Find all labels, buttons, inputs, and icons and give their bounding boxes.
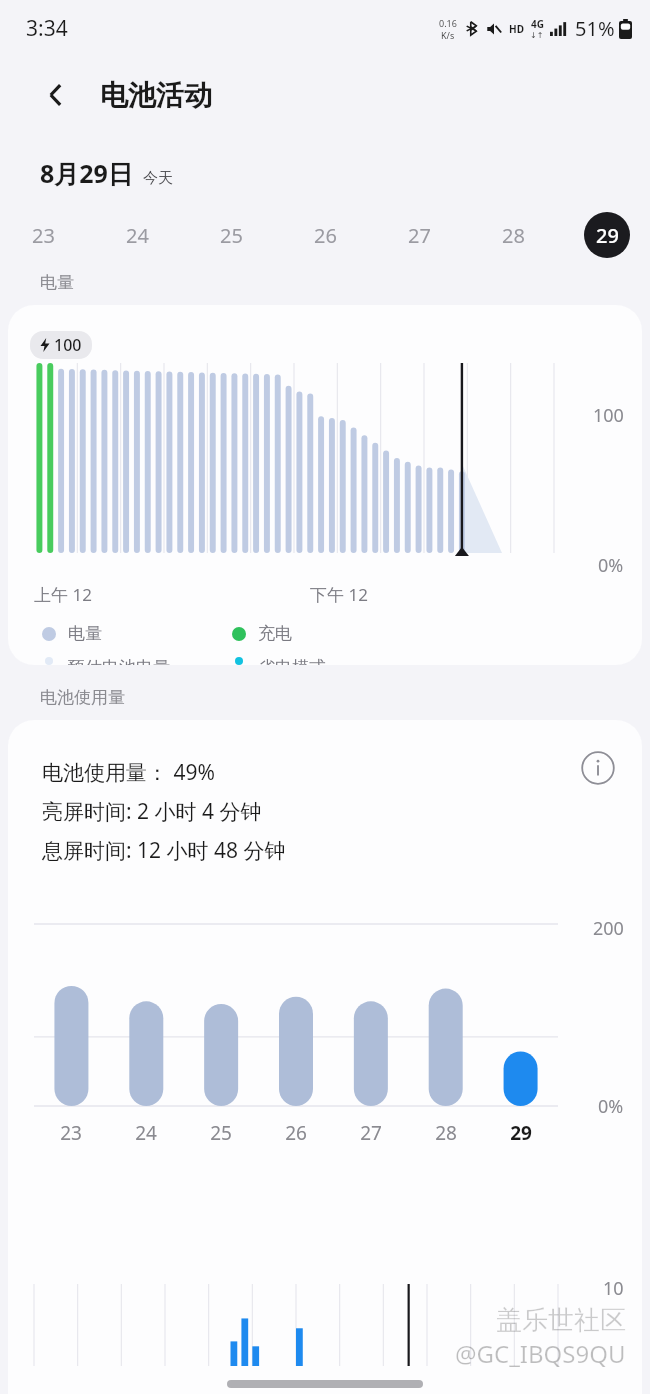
staticText: 4G — [531, 17, 544, 31]
staticText: 息屏时间: 12 小时 48 分钟 — [42, 836, 286, 865]
staticText: 26 — [314, 222, 337, 249]
staticText: 今天 — [143, 169, 173, 188]
staticText: 上午 12 — [34, 583, 92, 606]
staticText: 100 — [54, 334, 82, 356]
button[interactable]: 29 — [584, 212, 630, 258]
button[interactable]: 100 — [8, 305, 642, 665]
button[interactable]: 26 — [302, 212, 348, 258]
staticText: 25 — [210, 1120, 232, 1146]
button[interactable]: 25 — [208, 212, 254, 258]
staticText: 省电模式 — [258, 657, 326, 665]
staticText: 亮屏时间: 2 小时 4 分钟 — [42, 797, 262, 826]
staticText: 29 — [596, 222, 619, 249]
staticText: 电池活动 — [100, 78, 212, 113]
staticText: @GC_IBQS9QU — [455, 1337, 626, 1370]
staticText: 26 — [285, 1120, 307, 1146]
staticText: 0% — [598, 553, 624, 578]
staticText: 28 — [435, 1120, 457, 1146]
staticText: 51% — [575, 15, 615, 42]
staticText: 10 — [603, 1276, 624, 1301]
staticText: 电池使用量 — [40, 687, 125, 708]
staticText: 8月29日 — [40, 156, 133, 190]
staticText: 27 — [360, 1120, 382, 1146]
staticText: ↓↑ — [530, 31, 544, 40]
staticText: 电池使用量： 49% — [42, 758, 215, 787]
staticText: 23 — [32, 222, 55, 249]
button[interactable]: Back — [34, 73, 78, 117]
staticText: 25 — [220, 222, 243, 249]
staticText: 23 — [60, 1120, 82, 1146]
staticText: 3:34 — [26, 14, 68, 43]
staticText: 29 — [510, 1120, 532, 1146]
staticText: 27 — [408, 222, 431, 249]
staticText: K/s — [441, 29, 455, 41]
button[interactable]: 电池使用量： 49% — [8, 720, 642, 1394]
button[interactable]: 23 — [20, 212, 66, 258]
staticText: 200 — [593, 916, 624, 941]
staticText: 电量 — [68, 623, 102, 644]
staticText: 24 — [135, 1120, 157, 1146]
staticText: 100 — [593, 403, 624, 428]
staticText: 0.16 — [439, 17, 457, 29]
button[interactable]: 24 — [114, 212, 160, 258]
staticText: 28 — [502, 222, 525, 249]
button[interactable]: Info — [576, 746, 620, 790]
staticText: 电量 — [40, 272, 74, 293]
staticText: 预估电池电量 — [68, 657, 170, 665]
staticText: 0% — [598, 1094, 624, 1119]
button[interactable]: 28 — [490, 212, 536, 258]
staticText: 24 — [126, 222, 149, 249]
button[interactable]: 27 — [396, 212, 442, 258]
staticText: 盖乐世社区 — [496, 1304, 626, 1337]
staticText: HD — [509, 22, 524, 36]
staticText: 下午 12 — [310, 583, 368, 606]
staticText: 充电 — [258, 623, 292, 644]
